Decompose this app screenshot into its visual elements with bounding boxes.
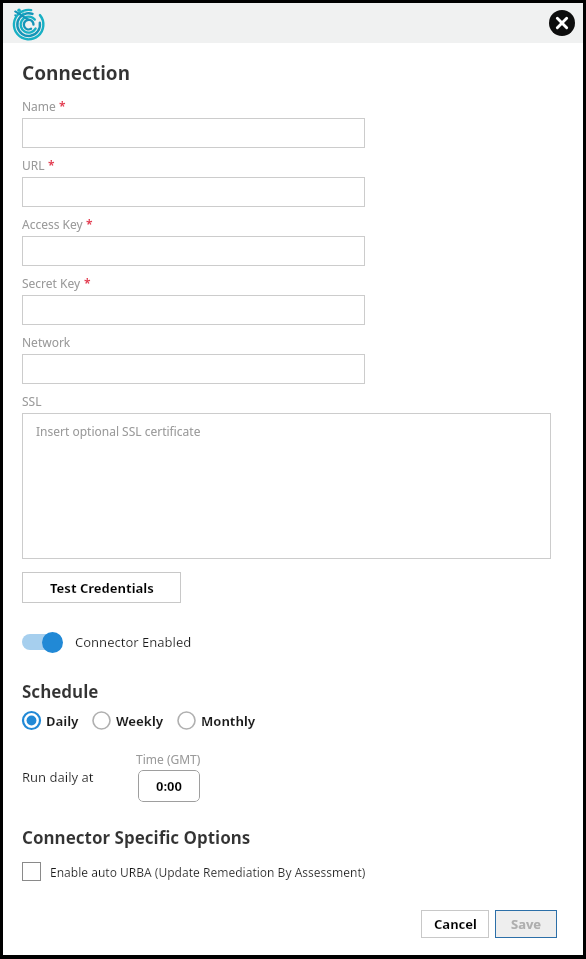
button[interactable]: Weekly	[92, 711, 164, 730]
staticText: Run daily at	[22, 768, 94, 786]
button[interactable]	[22, 295, 365, 325]
staticText: Cancel	[434, 915, 477, 933]
staticText: Time (GMT)	[136, 751, 201, 767]
staticText: Schedule	[22, 680, 99, 703]
staticText: Access Key	[22, 216, 83, 232]
button[interactable]	[22, 236, 365, 266]
staticText: *	[86, 216, 93, 232]
staticText: 0:00	[156, 777, 182, 795]
staticText: Connector Enabled	[75, 633, 192, 651]
button[interactable]: Enable auto URBA (Update Remediation By …	[22, 862, 366, 881]
staticText: Network	[22, 334, 71, 350]
staticText: Insert optional SSL certificate	[36, 423, 201, 439]
staticText: SSL	[22, 393, 42, 409]
staticText: Monthly	[201, 712, 256, 730]
staticText: Name	[22, 98, 56, 114]
button[interactable]: Daily	[22, 711, 79, 730]
staticText: Enable auto URBA (Update Remediation By …	[50, 864, 366, 880]
button[interactable]	[22, 118, 365, 148]
button[interactable]	[22, 177, 365, 207]
staticText: Daily	[46, 712, 79, 730]
staticText: Secret Key	[22, 275, 81, 291]
button[interactable]: Save	[495, 910, 557, 938]
button[interactable]: 0:00	[138, 770, 200, 802]
staticText: *	[84, 275, 91, 291]
staticText: *	[59, 98, 66, 114]
staticText: Connection	[22, 60, 131, 86]
staticText: Save	[511, 915, 542, 933]
button[interactable]	[22, 354, 365, 384]
button[interactable]: Monthly	[177, 711, 256, 730]
staticText: Test Credentials	[50, 579, 154, 597]
button[interactable]: Close	[549, 10, 575, 36]
button[interactable]: Test Credentials	[22, 572, 181, 603]
staticText: Connector Specific Options	[22, 826, 251, 849]
button[interactable]: Insert optional SSL certificate	[22, 413, 551, 559]
button[interactable]: Cancel	[421, 910, 489, 938]
staticText: URL	[22, 157, 45, 173]
staticText: *	[48, 157, 55, 173]
button[interactable]: Connector Enabled	[22, 631, 192, 653]
other: Logo	[12, 7, 44, 39]
staticText: Weekly	[116, 712, 164, 730]
